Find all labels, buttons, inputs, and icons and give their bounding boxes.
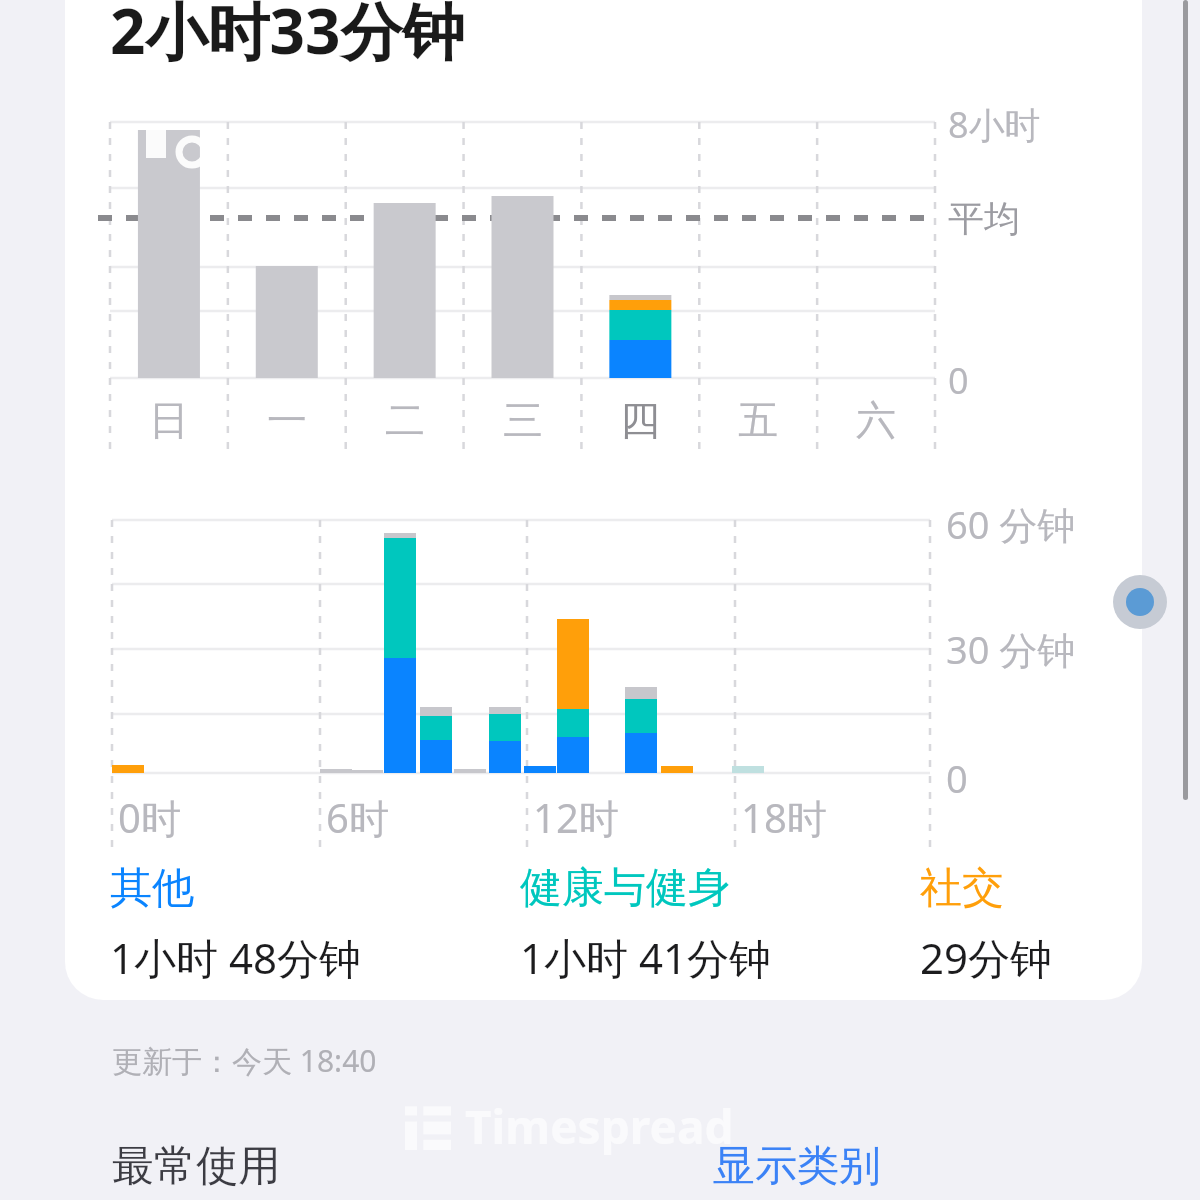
staticText: 8小时: [948, 100, 1041, 149]
staticText: 四: [620, 395, 660, 445]
staticText: 一: [267, 395, 307, 445]
button[interactable]: 最常使用: [0, 1140, 420, 1200]
staticText: 更新于：今天 18:40: [112, 1040, 377, 1081]
staticText: 五: [738, 395, 778, 445]
button[interactable]: 社交: [920, 862, 1130, 986]
staticText: 日: [149, 395, 189, 445]
staticText: 六: [856, 395, 896, 445]
staticText: 社交: [920, 862, 1004, 915]
staticText: 健康与健身: [520, 862, 730, 915]
button[interactable]: 健康与健身: [520, 862, 920, 986]
staticText: 60 分钟: [946, 498, 1076, 550]
staticText: Timespread: [465, 1095, 734, 1158]
staticText: 0: [948, 356, 969, 405]
staticText: 平均: [948, 196, 1020, 241]
staticText: 29分钟: [920, 929, 1053, 986]
staticText: 其他: [110, 862, 194, 915]
staticText: 30 分钟: [946, 623, 1076, 675]
staticText: 6时: [326, 790, 389, 845]
staticText: 12时: [533, 790, 619, 845]
staticText: 18时: [741, 790, 827, 845]
staticText: 2小时33分钟: [110, 0, 465, 73]
staticText: 1小时 41分钟: [520, 929, 771, 986]
staticText: 0时: [118, 790, 181, 845]
staticText: 最常使用: [112, 1140, 280, 1193]
button[interactable]: 显示类别: [581, 1140, 881, 1200]
button[interactable]: 其他: [110, 862, 520, 986]
staticText: 1小时 48分钟: [110, 929, 361, 986]
staticText: 0: [946, 752, 968, 804]
staticText: 二: [385, 395, 425, 445]
staticText: 显示类别: [713, 1140, 881, 1193]
other: Scroll indicator: [1113, 575, 1167, 629]
staticText: 三: [503, 395, 543, 445]
